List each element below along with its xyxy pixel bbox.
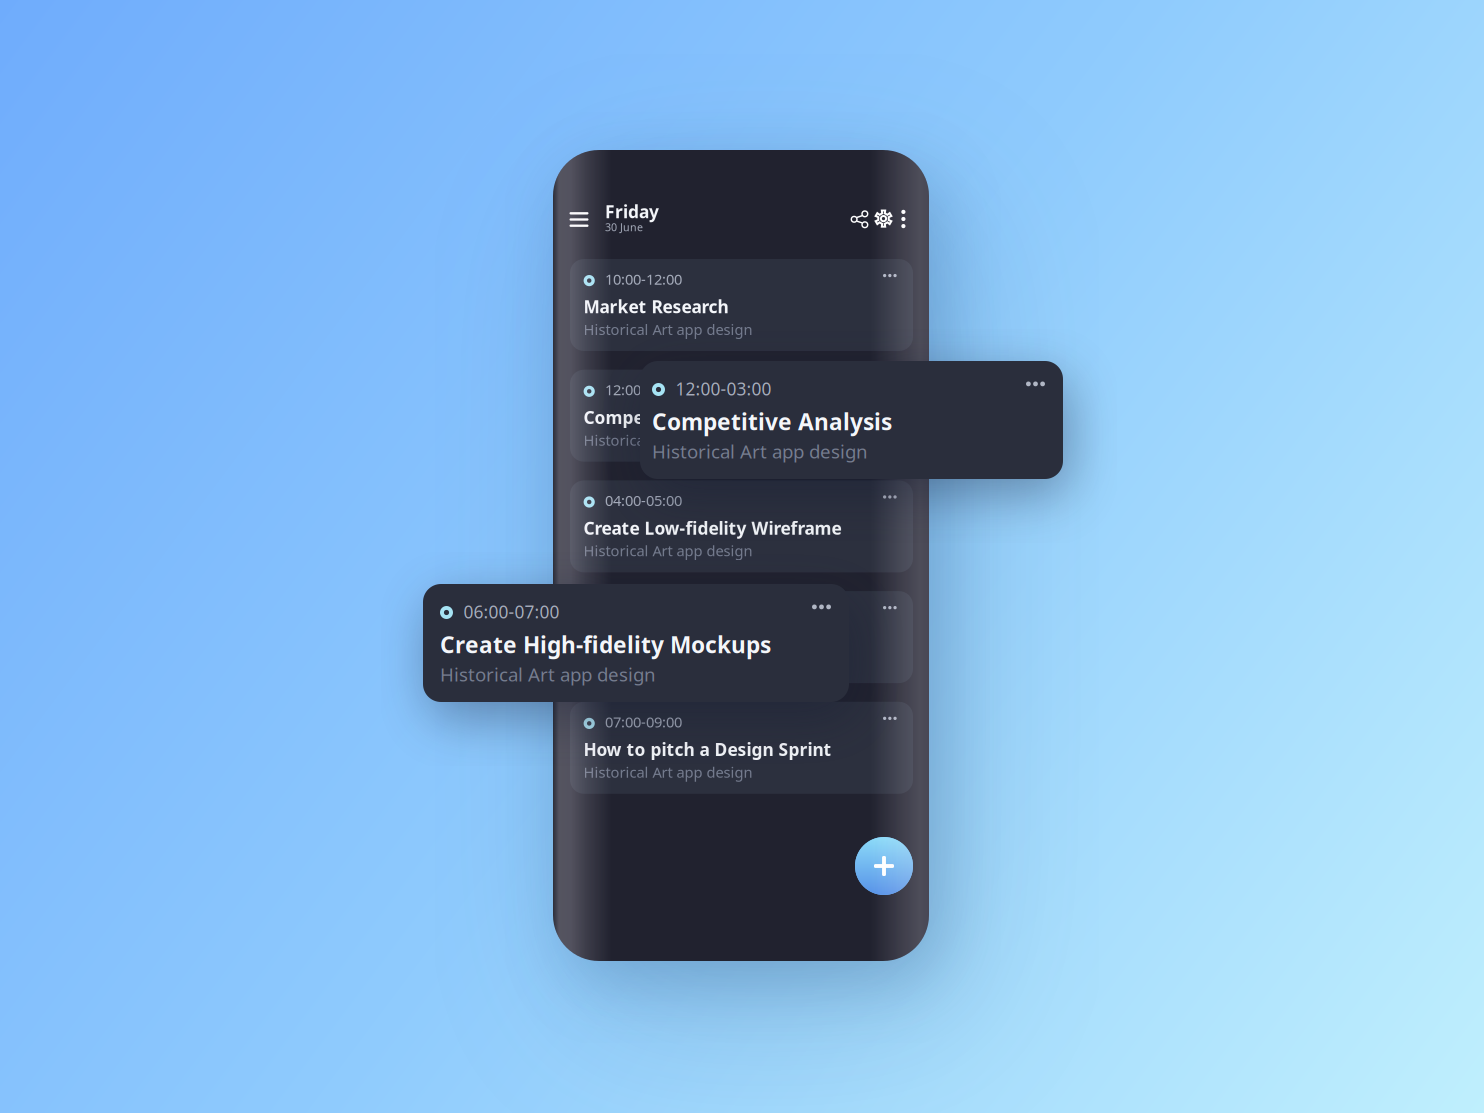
staticText: 06:00-07:00 [463, 600, 559, 623]
button[interactable]: Settings [872, 208, 894, 230]
staticText: Market Research [584, 295, 729, 318]
staticText: Historical Art app design [584, 541, 753, 560]
staticText: How to pitch a Design Sprint [584, 738, 832, 761]
staticText: Friday [605, 200, 659, 223]
button[interactable]: 06:00-07:00 [423, 584, 849, 702]
staticText: 30 June [605, 220, 643, 234]
button[interactable]: 07:00-09:00 [570, 702, 913, 794]
staticText: Historical Art app design [584, 762, 753, 782]
button[interactable]: 10:00-12:00 [570, 259, 913, 351]
staticText: 10:00-12:00 [605, 269, 682, 289]
button[interactable]: 12:00-03:00 [570, 370, 913, 462]
button[interactable]: Menu [566, 206, 592, 232]
staticText: Create High-fidelity Mockups [440, 629, 771, 659]
staticText: Historical Art app design [440, 662, 656, 687]
staticText: Historical Art app design [584, 319, 753, 339]
button[interactable]: Add task [855, 837, 913, 895]
button[interactable]: 12:00-03:00 [640, 361, 1063, 479]
button[interactable]: More options [895, 208, 911, 230]
staticText: 04:00-05:00 [605, 491, 682, 510]
staticText: 12:00-03:00 [605, 380, 682, 399]
staticText: Create High-fidelity Mockups [584, 627, 835, 650]
button[interactable]: 06:00-07:00 [570, 591, 913, 683]
button[interactable]: Share [848, 208, 870, 230]
staticText: Historical Art app design [584, 430, 753, 450]
button[interactable]: 04:00-05:00 [570, 480, 913, 572]
staticText: Competitive Analysis [584, 406, 766, 429]
staticText: Create Low-fidelity Wireframe [584, 516, 842, 539]
staticText: Historical Art app design [584, 652, 753, 671]
staticText: Historical Art app design [652, 439, 868, 464]
staticText: 07:00-09:00 [605, 712, 682, 731]
staticText: 12:00-03:00 [675, 377, 771, 400]
staticText: Competitive Analysis [652, 406, 892, 436]
